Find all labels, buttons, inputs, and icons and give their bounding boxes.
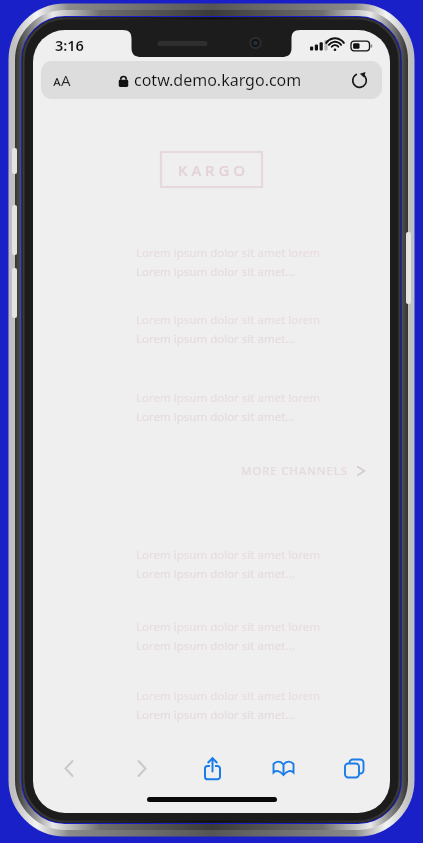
button[interactable]: Back bbox=[33, 745, 105, 791]
button[interactable]: Text size bbox=[41, 61, 382, 99]
button[interactable]: Tabs bbox=[319, 745, 390, 791]
staticText: Lorem ipsum dolor sit amet lorem bbox=[136, 688, 320, 704]
staticText: Lorem ipsum dolor sit amet... bbox=[136, 409, 295, 425]
staticText: Lorem ipsum dolor sit amet... bbox=[136, 566, 295, 582]
staticText: 3:16 bbox=[55, 35, 84, 55]
staticText: Lorem ipsum dolor sit amet... bbox=[136, 707, 295, 723]
staticText: Lorem ipsum dolor sit amet... bbox=[136, 331, 295, 347]
button[interactable]: MORE CHANNELS bbox=[241, 463, 366, 479]
staticText: Lorem ipsum dolor sit amet lorem bbox=[136, 312, 320, 328]
staticText: Lorem ipsum dolor sit amet lorem bbox=[136, 547, 320, 563]
staticText: Lorem ipsum dolor sit amet... bbox=[136, 264, 295, 280]
button[interactable]: Forward bbox=[105, 745, 177, 791]
staticText: Lorem ipsum dolor sit amet lorem bbox=[136, 245, 320, 261]
staticText: Lorem ipsum dolor sit amet lorem bbox=[136, 390, 320, 406]
button[interactable]: Bookmarks bbox=[248, 745, 319, 791]
staticText: Lorem ipsum dolor sit amet... bbox=[136, 638, 295, 654]
staticText: MORE CHANNELS bbox=[241, 463, 348, 479]
staticText: ᴀA bbox=[53, 70, 71, 90]
staticText: cotw.demo.kargo.com bbox=[134, 69, 302, 91]
button[interactable]: Reload bbox=[348, 69, 370, 91]
staticText: Lorem ipsum dolor sit amet lorem bbox=[136, 619, 320, 635]
button[interactable]: Share bbox=[177, 745, 248, 791]
staticText: K A R G O bbox=[178, 160, 246, 180]
